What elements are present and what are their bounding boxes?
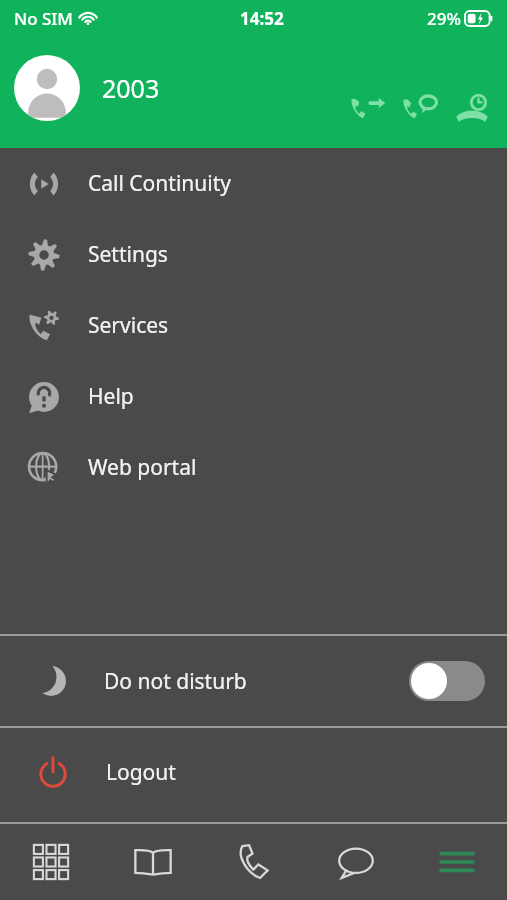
button[interactable]: Help [0,361,507,432]
button[interactable]: Calls [204,824,305,900]
button[interactable]: Web portal [0,432,507,503]
button[interactable]: Services [0,290,507,361]
staticText: 29% [427,7,461,30]
button[interactable]: Settings [0,219,507,290]
button[interactable]: Call with message [397,88,443,134]
button[interactable]: Recent calls [449,88,495,134]
button[interactable]: Keypad [0,824,102,900]
staticText: Call Continuity [88,169,231,198]
staticText: Settings [88,240,168,269]
staticText: Web portal [88,453,197,482]
button[interactable]: Logout [0,728,507,816]
button[interactable]: Call Continuity [0,148,507,219]
button[interactable]: Contacts [102,824,204,900]
button[interactable]: Do not disturb [0,636,507,726]
staticText: Logout [106,758,176,787]
staticText: Do not disturb [104,667,247,696]
staticText: 2003 [102,71,160,105]
button[interactable]: Menu [406,824,507,900]
staticText: No SIM [14,7,73,30]
staticText: 14:52 [240,7,284,30]
button[interactable]: Messages [305,824,406,900]
staticText: Help [88,382,134,411]
staticText: Services [88,311,169,340]
button[interactable] [14,55,80,121]
button[interactable]: Call forward [345,88,391,134]
